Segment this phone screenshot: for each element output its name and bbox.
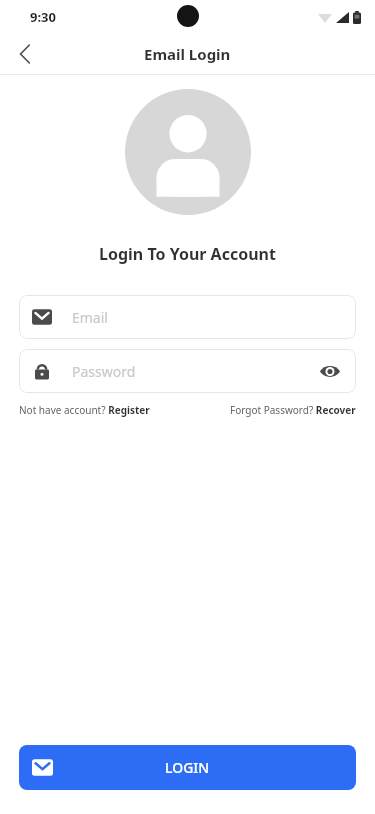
button[interactable]: Password: [19, 349, 356, 393]
staticText: Forgot Password? Recover: [230, 403, 356, 417]
button[interactable]: Back: [6, 35, 44, 73]
staticText: Login To Your Account: [99, 243, 276, 265]
button[interactable]: Not have account? Register: [19, 403, 150, 417]
button[interactable]: Email: [19, 295, 356, 339]
staticText: Email: [72, 308, 108, 327]
button[interactable]: LOGIN: [19, 745, 356, 790]
staticText: LOGIN: [165, 758, 210, 777]
button[interactable]: Show password: [317, 358, 343, 384]
staticText: Email Login: [144, 44, 231, 64]
staticText: Password: [72, 362, 317, 381]
button[interactable]: Forgot Password? Recover: [230, 403, 356, 417]
staticText: 9:30: [30, 8, 56, 26]
staticText: Not have account? Register: [19, 403, 150, 417]
